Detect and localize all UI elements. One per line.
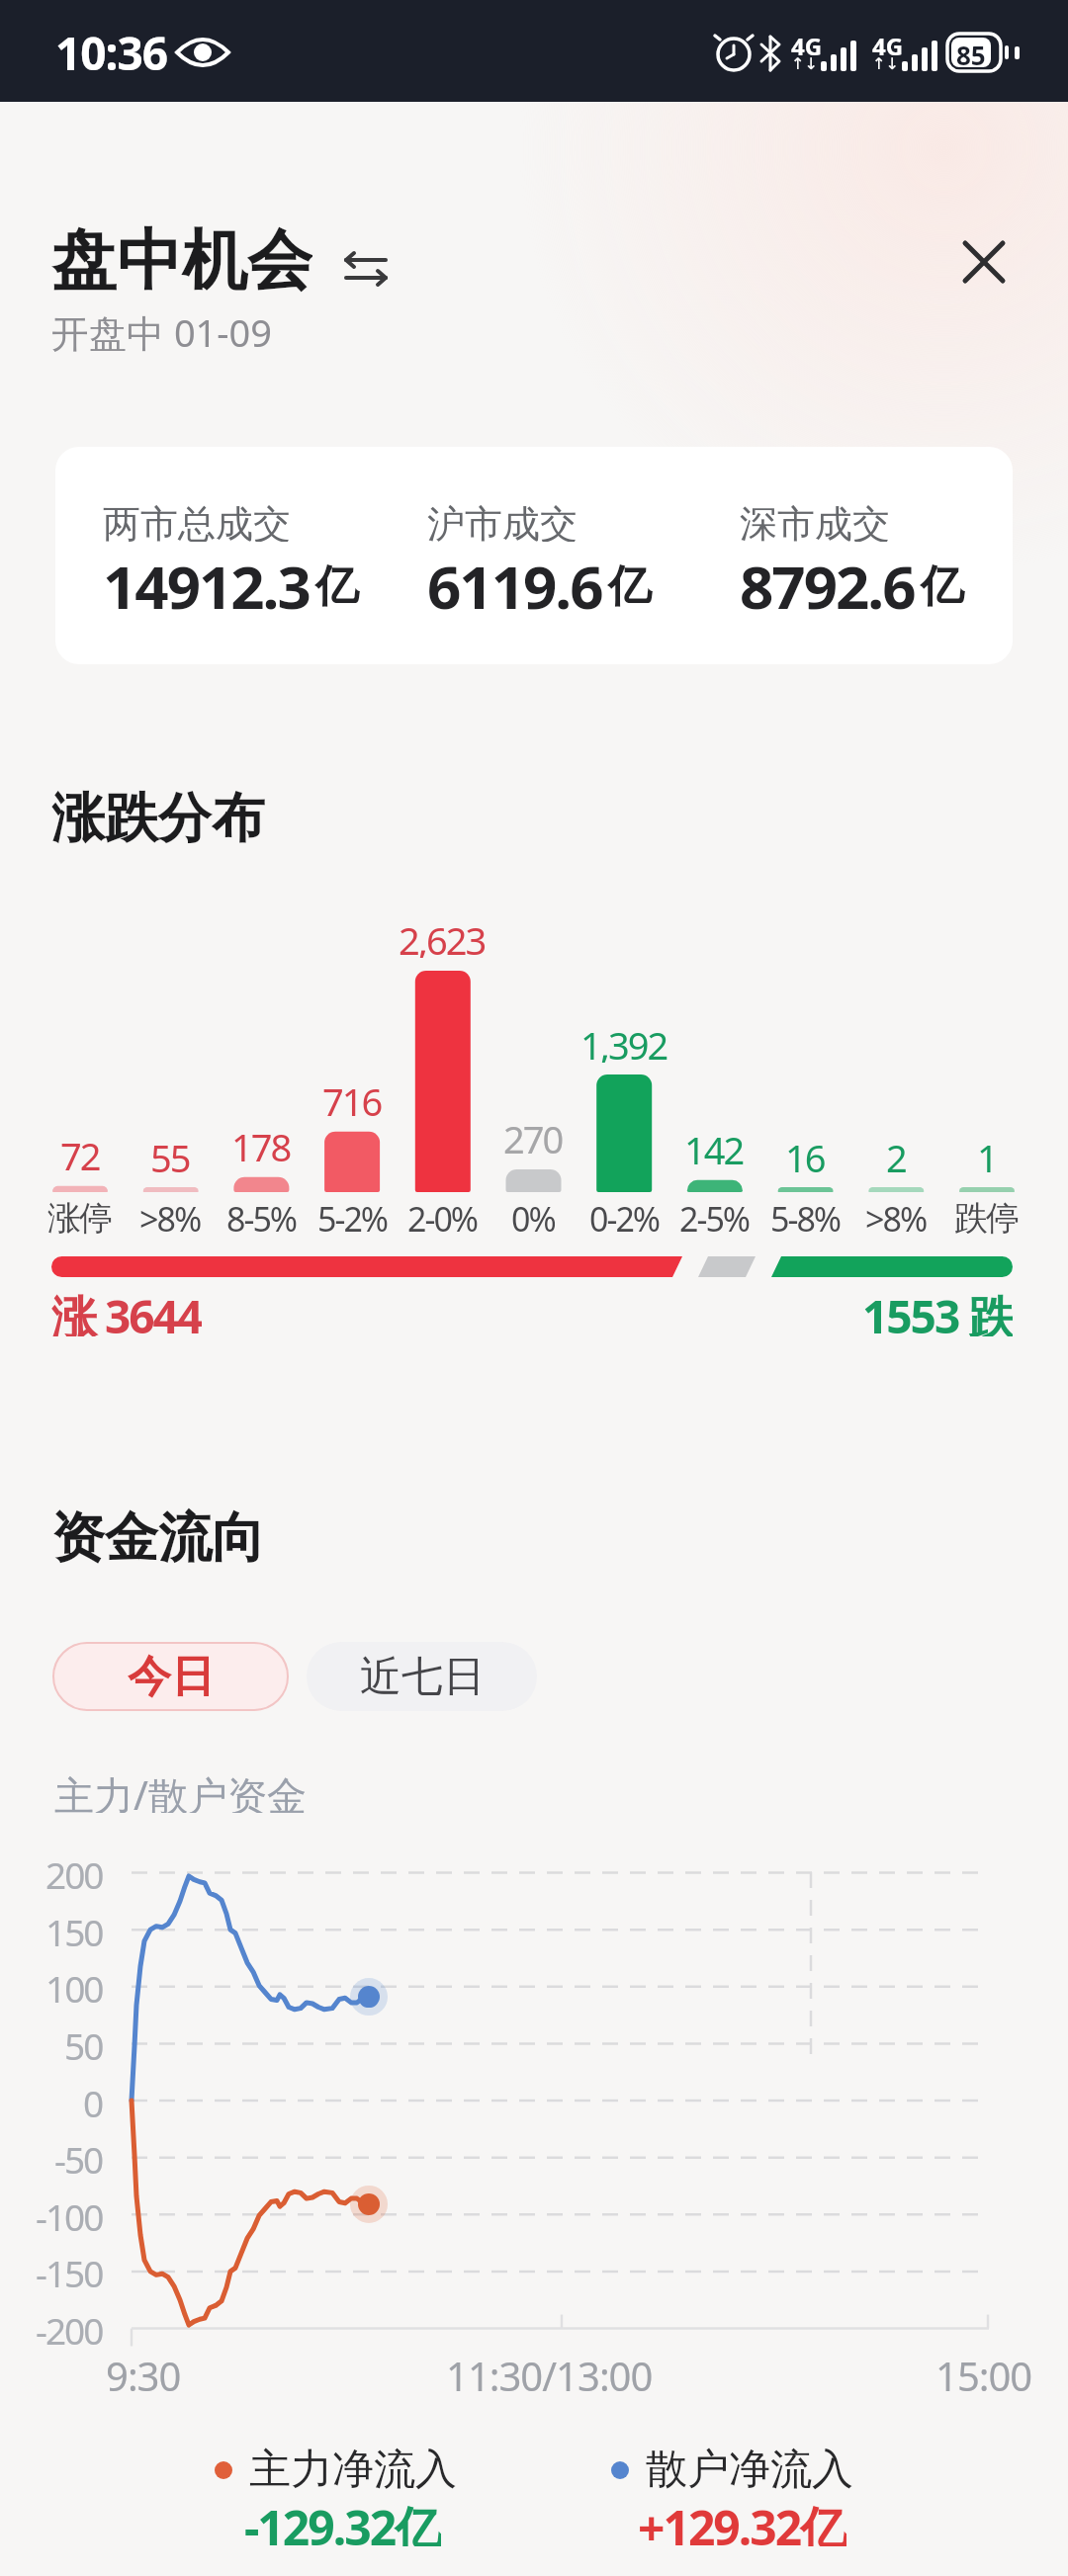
staticText: 85 — [956, 38, 986, 67]
staticText: 散户净流入 — [646, 2444, 853, 2495]
staticText: 178 — [231, 1121, 291, 1164]
staticText: 8-5% — [226, 1196, 297, 1240]
staticText: 11:30/13:00 — [446, 2349, 653, 2394]
staticText: 近七日 — [360, 1651, 485, 1703]
staticText: 5-8% — [770, 1196, 841, 1240]
staticText: 2 — [886, 1132, 906, 1175]
button[interactable] — [55, 447, 1013, 664]
staticText: -100 — [36, 2191, 103, 2237]
staticText: 涨停 — [48, 1197, 112, 1240]
staticText: 跌停 — [955, 1197, 1019, 1240]
staticText: 72 — [60, 1130, 100, 1173]
staticText: 亿 — [315, 559, 359, 614]
staticText: 两市总成交 — [103, 500, 291, 542]
staticText: >8% — [865, 1196, 927, 1240]
staticText: 270 — [503, 1113, 563, 1157]
staticText: 150 — [45, 1907, 103, 1952]
staticText: -129.32亿 — [244, 2495, 441, 2546]
staticText: 1553 跌 — [862, 1285, 1013, 1336]
staticText: 亿 — [921, 559, 964, 614]
staticText: 1 — [977, 1132, 997, 1175]
staticText: 资金流向 — [51, 1504, 265, 1564]
staticText: 涨 3644 — [51, 1285, 202, 1336]
staticText: 142 — [684, 1124, 744, 1167]
staticText: 沪市成交 — [427, 500, 578, 542]
staticText: 1,392 — [580, 1019, 667, 1063]
staticText: 0 — [83, 2078, 103, 2123]
staticText: 涨跌分布 — [51, 785, 265, 844]
staticText: -150 — [36, 2248, 103, 2293]
staticText: 50 — [64, 2020, 103, 2066]
staticText: ↑↓ — [872, 54, 899, 73]
staticText: 14912.3 — [103, 546, 310, 615]
staticText: 主力净流入 — [249, 2444, 457, 2495]
staticText: 亿 — [608, 559, 652, 614]
staticText: ↑↓ — [791, 54, 818, 73]
staticText: 16 — [785, 1132, 825, 1175]
staticText: 6119.6 — [427, 546, 602, 615]
staticText: -50 — [54, 2134, 103, 2180]
staticText: 716 — [322, 1075, 382, 1119]
staticText: 200 — [45, 1849, 103, 1895]
staticText: 55 — [150, 1132, 190, 1175]
staticText: 8792.6 — [740, 546, 915, 615]
staticText: +129.32亿 — [638, 2495, 846, 2546]
button[interactable] — [939, 225, 1028, 304]
staticText: 5-2% — [317, 1196, 388, 1240]
staticText: 10:36 — [55, 22, 168, 79]
button[interactable]: 今日 — [52, 1642, 289, 1711]
staticText: 主力/散户资金 — [54, 1767, 307, 1813]
staticText: 深市成交 — [740, 500, 890, 542]
staticText: >8% — [139, 1196, 201, 1240]
staticText: 4G — [872, 30, 904, 55]
staticText: 0-2% — [589, 1196, 660, 1240]
staticText: 2,623 — [399, 914, 486, 958]
staticText: 今日 — [128, 1650, 215, 1704]
staticText: -200 — [36, 2305, 103, 2351]
staticText: 9:30 — [106, 2349, 181, 2394]
staticText: 2-0% — [407, 1196, 478, 1240]
staticText: 2-5% — [679, 1196, 750, 1240]
staticText: 100 — [45, 1963, 103, 2009]
button[interactable]: 近七日 — [307, 1642, 537, 1711]
staticText: 0% — [511, 1196, 555, 1240]
staticText: 15:00 — [935, 2349, 1032, 2394]
staticText: 盘中机会 — [51, 219, 312, 299]
staticText: 4G — [791, 30, 823, 55]
staticText: 开盘中 01-09 — [51, 306, 273, 352]
